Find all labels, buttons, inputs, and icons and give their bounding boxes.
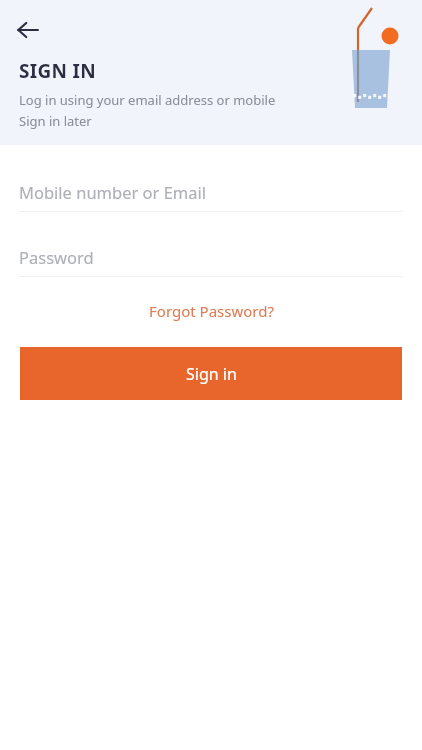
staticText: Sign in bbox=[186, 363, 237, 385]
button[interactable]: Sign in later bbox=[19, 112, 92, 130]
button[interactable]: Mobile number or Email bbox=[0, 172, 422, 212]
staticText: SIGN IN bbox=[19, 58, 96, 84]
button[interactable]: Back bbox=[10, 12, 46, 48]
button[interactable]: Sign in bbox=[20, 347, 402, 400]
button[interactable]: Forgot Password? bbox=[137, 297, 286, 325]
staticText: Log in using your email address or mobil… bbox=[19, 91, 276, 109]
staticText: Mobile number or Email bbox=[19, 181, 207, 203]
button[interactable]: Password bbox=[0, 237, 422, 277]
staticText: Password bbox=[19, 246, 94, 268]
staticText: Forgot Password? bbox=[149, 301, 274, 321]
